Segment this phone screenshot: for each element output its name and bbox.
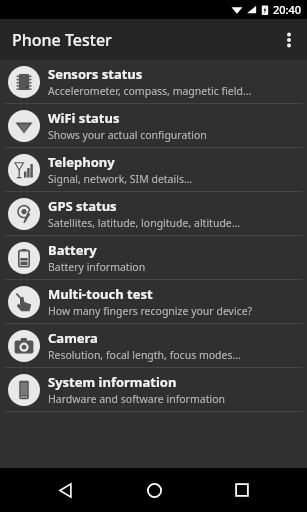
button[interactable]: Sensors status [0,60,307,104]
staticText: Battery information [48,260,146,274]
staticText: Hardware and software information [48,392,225,406]
staticText: Telephony [48,153,115,171]
staticText: GPS status [48,197,117,215]
staticText: Resolution, focal length, focus modes… [48,348,241,362]
staticText: Phone Tester [12,29,112,51]
staticText: WiFi status [48,109,120,127]
button[interactable]: Back [41,468,89,512]
button[interactable]: Recents [218,468,266,512]
button[interactable]: Multi-touch test [0,280,307,324]
button[interactable]: WiFi status [0,104,307,148]
button[interactable]: GPS status [0,192,307,236]
button[interactable]: Telephony [0,148,307,192]
button[interactable]: System information [0,368,307,412]
button[interactable]: Home [130,468,178,512]
staticText: System information [48,373,177,391]
staticText: 20:40 [273,2,302,17]
staticText: Accelerometer, compass, magnetic field… [48,84,252,98]
staticText: Camera [48,329,98,347]
button[interactable]: More options [271,19,307,60]
staticText: Sensors status [48,65,143,83]
staticText: Signal, network, SIM details… [48,172,193,186]
staticText: Shows your actual configuration [48,128,207,142]
button[interactable]: Battery [0,236,307,280]
staticText: Battery [48,241,97,259]
staticText: How many fingers recognize your device? [48,304,253,318]
staticText: Multi-touch test [48,285,153,303]
staticText: Satellites, latitude, longitude, altitud… [48,216,241,230]
button[interactable]: Camera [0,324,307,368]
